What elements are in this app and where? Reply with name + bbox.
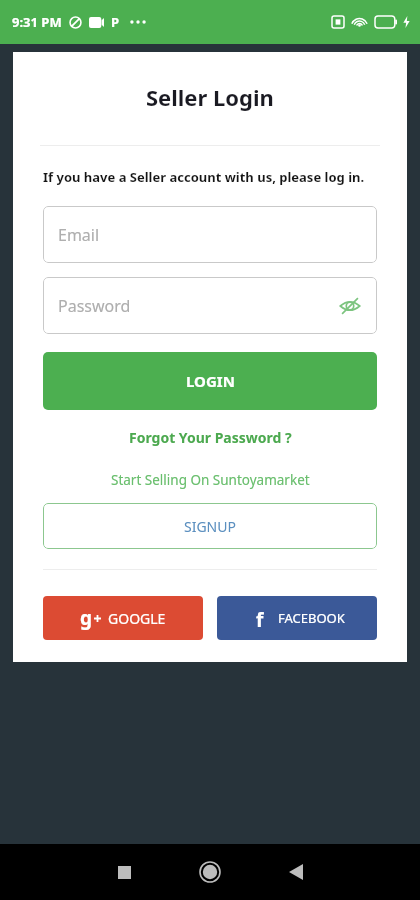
button[interactable]: Back	[270, 846, 322, 898]
button[interactable]: Email	[43, 206, 377, 263]
staticText: Forgot Your Password ?	[129, 428, 292, 447]
button[interactable]: SIGNUP	[43, 503, 377, 549]
staticText: SIGNUP	[184, 517, 236, 536]
button[interactable]: Recent apps	[98, 846, 150, 898]
button[interactable]: Password	[43, 277, 377, 334]
staticText: 9:31 PM	[12, 13, 62, 31]
staticText: Start Selling On Suntoyamarket	[111, 471, 310, 489]
staticText: LOGIN	[186, 371, 235, 391]
button[interactable]: g	[43, 596, 203, 640]
staticText: f	[256, 607, 264, 629]
staticText: If you have a Seller account with us, pl…	[43, 168, 377, 186]
staticText: Email	[58, 224, 100, 246]
button[interactable]: Home	[184, 846, 236, 898]
staticText: FACEBOOK	[278, 609, 345, 627]
staticText: P	[111, 13, 120, 31]
button[interactable]: f	[217, 596, 377, 640]
staticText: g	[80, 605, 93, 631]
staticText: Password	[58, 295, 131, 317]
button[interactable]: Show password	[337, 293, 363, 319]
staticText: Seller Login	[146, 82, 274, 112]
staticText: GOOGLE	[108, 609, 166, 628]
button[interactable]: Start Selling On Suntoyamarket	[43, 471, 377, 489]
button[interactable]: LOGIN	[43, 352, 377, 410]
button[interactable]: Forgot Your Password ?	[43, 428, 377, 447]
